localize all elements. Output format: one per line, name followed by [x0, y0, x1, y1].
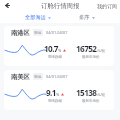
button[interactable]: Back	[3, 1, 12, 10]
staticText: 周涨跌幅	[48, 55, 62, 59]
staticText: 元/柜	[97, 48, 106, 53]
button[interactable]: 南港区	[4, 26, 114, 66]
staticText: %	[58, 48, 62, 53]
staticText: %	[56, 92, 60, 97]
staticText: 南美区	[11, 73, 30, 81]
staticText: 04/01-04/07	[46, 30, 68, 35]
staticText: 海运	[34, 30, 42, 35]
staticText: 元/柜	[97, 92, 106, 97]
staticText: 15138	[76, 87, 97, 98]
staticText: 04/01-04/07	[46, 74, 68, 79]
button[interactable]: 南美区	[4, 70, 114, 110]
staticText: 海运	[34, 74, 42, 79]
staticText: 南港区	[11, 29, 30, 37]
button[interactable]: 排序	[77, 13, 97, 22]
staticText: 订舱行情周报	[41, 2, 80, 10]
staticText: 16752	[76, 43, 97, 54]
staticText: 最新市场价	[82, 55, 100, 59]
button[interactable]: 我的订阅	[97, 3, 117, 9]
staticText: 全部海运	[25, 14, 46, 21]
button[interactable]: 全部海运	[23, 13, 53, 22]
staticText: 9.1	[46, 87, 56, 98]
staticText: 周涨跌幅	[48, 99, 62, 103]
staticText: 排序	[79, 14, 90, 21]
staticText: 最新市场价	[82, 99, 100, 103]
staticText: 10.7	[44, 43, 58, 54]
